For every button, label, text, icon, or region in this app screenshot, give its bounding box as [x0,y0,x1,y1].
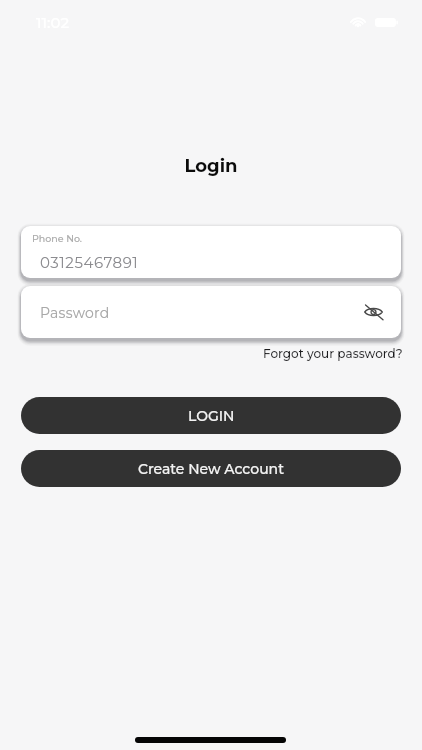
staticText: Forgot your password? [263,346,403,361]
button[interactable]: LOGIN [21,397,401,434]
staticText: Login [0,155,422,177]
staticText: Create New Account [138,460,284,477]
staticText: LOGIN [188,407,235,424]
button[interactable]: Create New Account [21,450,401,487]
button[interactable]: Show password [357,296,389,328]
staticText: 03125467891 [40,253,139,271]
staticText: Phone No. [32,233,82,245]
staticText: 11:02 [36,13,70,31]
staticText: Password [40,304,110,321]
button[interactable]: Password [21,286,401,338]
button[interactable]: Phone No. [21,226,401,278]
button[interactable]: Forgot your password? [255,344,411,363]
